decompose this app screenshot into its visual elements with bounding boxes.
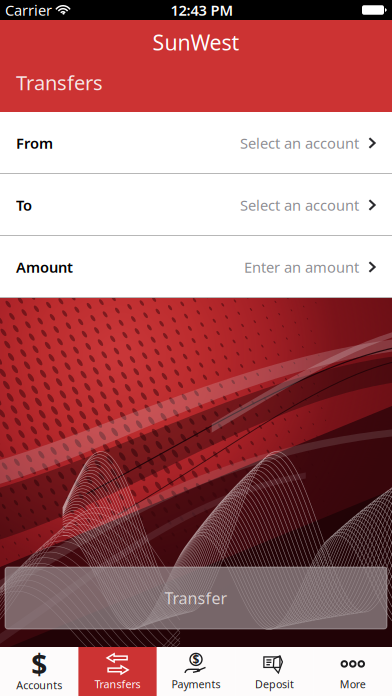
- staticText: 12:43 PM: [170, 0, 233, 20]
- staticText: Payments: [171, 677, 220, 691]
- button[interactable]: Amount: [0, 236, 392, 298]
- staticText: Select an account: [240, 195, 359, 215]
- staticText: Amount: [16, 257, 73, 277]
- button[interactable]: From: [0, 112, 392, 174]
- staticText: Enter an amount: [244, 257, 359, 277]
- staticText: From: [16, 133, 53, 153]
- staticText: $: [31, 645, 47, 682]
- button[interactable]: More: [314, 647, 392, 696]
- staticText: Select an account: [240, 133, 359, 153]
- staticText: Deposit: [255, 677, 294, 691]
- button[interactable]: $: [0, 647, 78, 696]
- staticText: Transfers: [95, 677, 141, 691]
- staticText: $: [192, 651, 199, 667]
- button[interactable]: Deposit: [235, 647, 314, 696]
- button[interactable]: Transfers: [78, 647, 157, 696]
- staticText: Accounts: [16, 678, 62, 692]
- button[interactable]: To: [0, 174, 392, 236]
- button[interactable]: $: [157, 647, 235, 696]
- staticText: Carrier: [5, 0, 52, 20]
- staticText: To: [16, 195, 32, 215]
- staticText: SunWest: [152, 28, 239, 56]
- staticText: Transfers: [16, 69, 103, 96]
- button[interactable]: Transfer: [5, 567, 387, 629]
- staticText: Transfer: [164, 587, 227, 609]
- staticText: More: [340, 677, 366, 691]
